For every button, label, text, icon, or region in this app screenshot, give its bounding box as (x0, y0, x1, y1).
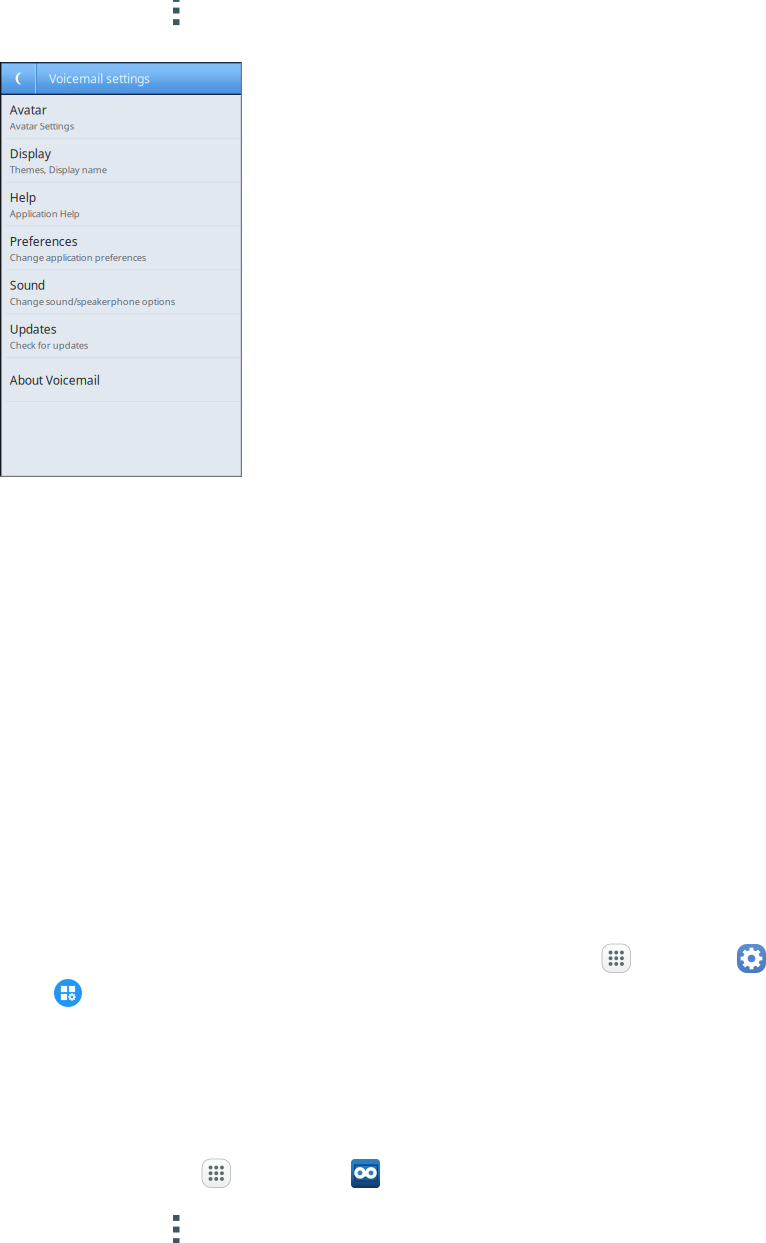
staticText: Sound (10, 277, 45, 293)
button[interactable]: Back (0, 62, 35, 95)
staticText: Avatar (10, 102, 47, 118)
button[interactable]: All apps (602, 944, 630, 972)
button[interactable]: Help (0, 183, 242, 227)
button[interactable]: Settings (737, 944, 766, 973)
button[interactable]: About Voicemail (0, 358, 242, 402)
staticText: Check for updates (10, 339, 88, 351)
staticText: Preferences (10, 233, 78, 249)
button[interactable]: Display (0, 139, 242, 183)
staticText: Help (10, 189, 36, 205)
button[interactable]: Application settings (54, 979, 82, 1007)
button[interactable]: Voicemail (351, 1159, 380, 1188)
staticText: Change sound/speakerphone options (10, 295, 175, 307)
staticText: Voicemail settings (49, 70, 150, 86)
button[interactable]: Preferences (0, 227, 242, 270)
staticText: Application Help (10, 207, 80, 220)
staticText: Updates (10, 321, 57, 337)
button[interactable]: All apps (202, 1159, 230, 1187)
staticText: Display (10, 146, 51, 161)
button[interactable]: Updates (0, 314, 242, 358)
staticText: About Voicemail (10, 372, 100, 388)
staticText: Avatar Settings (10, 120, 74, 132)
staticText: Themes, Display name (10, 163, 107, 176)
button[interactable]: Avatar (0, 95, 242, 139)
staticText: Change application preferences (10, 251, 146, 264)
button[interactable]: Sound (0, 270, 242, 314)
